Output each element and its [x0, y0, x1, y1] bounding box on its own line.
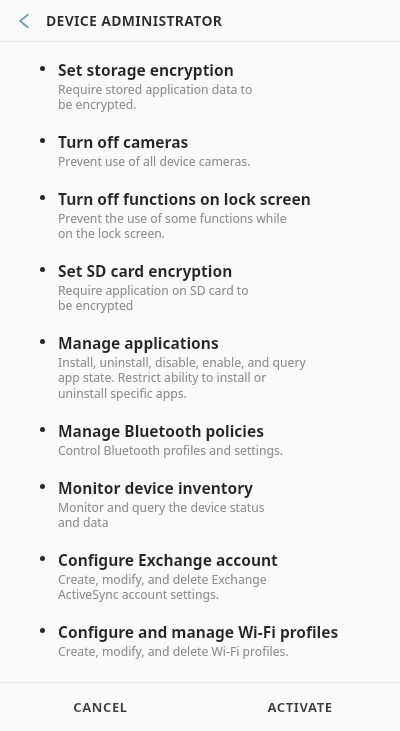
staticText: Configure and manage Wi-Fi profiles [58, 621, 339, 642]
button[interactable]: Set storage encryption [0, 50, 400, 122]
staticText: Monitor device inventory [58, 477, 253, 498]
staticText: Monitor and query the device status and … [58, 499, 265, 531]
staticText: Prevent the use of some functions while … [58, 210, 287, 242]
staticText: Set storage encryption [58, 59, 234, 80]
staticText: Install, uninstall, disable, enable, and… [58, 354, 306, 402]
staticText: Turn off functions on lock screen [58, 188, 311, 209]
staticText: Require stored application data to be en… [58, 81, 253, 113]
button[interactable]: Configure Exchange account [0, 540, 400, 612]
button[interactable]: Monitor device inventory [0, 468, 400, 540]
button[interactable]: Turn off functions on lock screen [0, 179, 400, 251]
staticText: Prevent use of all device cameras. [58, 153, 251, 170]
staticText: Control Bluetooth profiles and settings. [58, 442, 284, 459]
button[interactable]: Set SD card encryption [0, 251, 400, 323]
staticText: Require application on SD card to be enc… [58, 282, 249, 314]
button[interactable]: Turn off cameras [0, 122, 400, 179]
staticText: Set SD card encryption [58, 260, 233, 281]
button[interactable]: CANCEL [0, 683, 200, 731]
staticText: Create, modify, and delete Wi-Fi profile… [58, 643, 289, 660]
staticText: CANCEL [73, 698, 128, 716]
staticText: Turn off cameras [58, 131, 189, 152]
button[interactable]: Configure and manage Wi-Fi profiles [0, 612, 400, 669]
staticText: Manage applications [58, 332, 219, 353]
staticText: Manage Bluetooth policies [58, 420, 264, 441]
button[interactable]: Manage applications [0, 323, 400, 411]
button[interactable]: Back [0, 0, 46, 41]
staticText: Create, modify, and delete Exchange Acti… [58, 571, 267, 603]
button[interactable]: Manage Bluetooth policies [0, 411, 400, 468]
button[interactable]: ACTIVATE [200, 683, 400, 731]
staticText: Configure Exchange account [58, 549, 278, 570]
staticText: ACTIVATE [267, 698, 333, 716]
staticText: DEVICE ADMINISTRATOR [46, 11, 223, 30]
